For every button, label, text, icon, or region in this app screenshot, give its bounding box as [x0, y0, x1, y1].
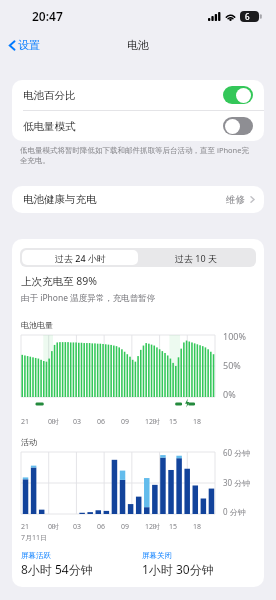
staticText: 8小时 54分钟 — [21, 561, 93, 577]
staticText: 维修 — [226, 194, 245, 206]
staticText: 由于 iPhone 温度异常，充电曾暂停 — [21, 292, 156, 304]
staticText: 电池 — [127, 38, 149, 52]
staticText: 30 分钟 — [223, 477, 251, 488]
button[interactable]: 设置 — [6, 36, 42, 54]
staticText: 屏幕关闭 — [142, 551, 172, 560]
staticText: 12时 — [145, 522, 161, 532]
button[interactable]: 电池百分比 — [12, 80, 264, 110]
button[interactable]: 低电量模式 — [12, 111, 264, 141]
staticText: 低电量模式将暂时降低如下载和邮件抓取等后台活动，直至 iPhone完全充电。 — [20, 145, 256, 166]
staticText: 电池健康与充电 — [23, 193, 97, 206]
staticText: 屏幕活跃 — [21, 551, 51, 560]
staticText: 设置 — [18, 38, 40, 52]
staticText: 18 — [193, 522, 202, 532]
staticText: 12时 — [145, 417, 161, 427]
staticText: 活动 — [21, 437, 37, 447]
staticText: 15 — [169, 417, 178, 427]
staticText: 60 分钟 — [223, 447, 251, 458]
staticText: 18 — [193, 417, 202, 427]
staticText: 过去 24 小时 — [55, 252, 106, 264]
button[interactable]: 过去 10 天 — [138, 250, 254, 265]
staticText: 1小时 30分钟 — [142, 561, 214, 577]
staticText: 50% — [223, 359, 241, 371]
staticText: 09 — [121, 417, 130, 427]
staticText: 7月11日 — [21, 533, 48, 543]
staticText: 03 — [73, 522, 82, 532]
staticText: 03 — [73, 417, 82, 427]
staticText: 15 — [169, 522, 178, 532]
staticText: 上次充电至 89% — [21, 274, 97, 288]
staticText: 20:47 — [32, 8, 63, 24]
staticText: 低电量模式 — [23, 120, 76, 133]
staticText: 0% — [223, 388, 236, 400]
staticText: 06 — [97, 522, 106, 532]
staticText: 电池百分比 — [23, 89, 76, 102]
staticText: 21 — [21, 522, 30, 532]
staticText: 0时 — [48, 417, 60, 427]
staticText: 过去 10 天 — [175, 252, 217, 264]
button[interactable]: 过去 24 小时 — [22, 250, 138, 265]
staticText: 0时 — [48, 522, 60, 532]
staticText: 100% — [223, 330, 246, 342]
staticText: 电池电量 — [21, 320, 53, 330]
button[interactable]: 电池健康与充电 — [12, 186, 264, 213]
staticText: 09 — [121, 522, 130, 532]
staticText: 6 — [245, 11, 250, 22]
staticText: 21 — [21, 417, 30, 427]
staticText: 0 分钟 — [223, 506, 246, 517]
staticText: 06 — [97, 417, 106, 427]
